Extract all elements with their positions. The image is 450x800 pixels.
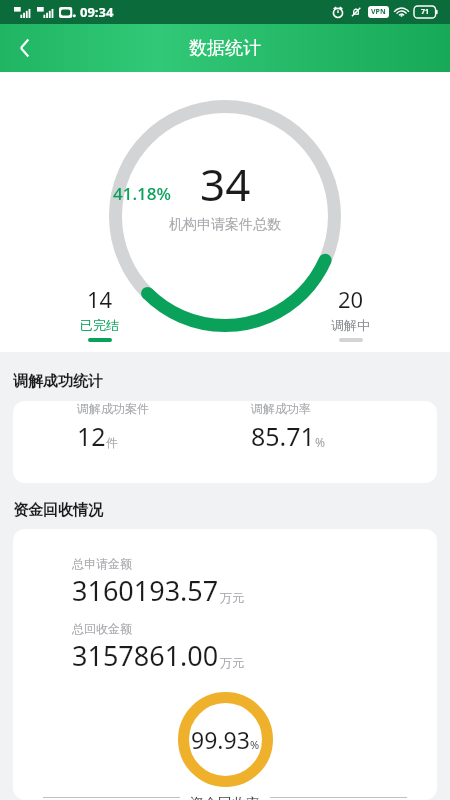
staticText: 34 bbox=[200, 154, 251, 214]
staticText: 万元 bbox=[220, 655, 244, 670]
staticText: 数据统计 bbox=[189, 37, 261, 60]
staticText: 调解成功率 bbox=[251, 401, 311, 416]
staticText: 调解成功案件 bbox=[77, 401, 149, 416]
staticText: 资金回收率 bbox=[190, 795, 260, 800]
staticText: 总申请金额 bbox=[72, 556, 132, 571]
staticText: 09:34 bbox=[80, 3, 114, 21]
staticText: 资金回收情况 bbox=[13, 501, 103, 520]
staticText: 14 bbox=[87, 284, 113, 314]
button[interactable]: 总申请金额 bbox=[13, 529, 437, 800]
staticText: % bbox=[315, 434, 325, 450]
button[interactable]: Back bbox=[0, 24, 50, 72]
staticText: 3157861.00 bbox=[72, 637, 219, 674]
button[interactable]: 14 bbox=[80, 284, 119, 342]
staticText: 调解中 bbox=[331, 317, 370, 333]
staticText: 万元 bbox=[220, 590, 244, 605]
staticText: VPN bbox=[371, 7, 386, 17]
staticText: 3160193.57 bbox=[72, 572, 219, 609]
staticText: 总回收金额 bbox=[72, 621, 132, 636]
staticText: 99.93 bbox=[191, 724, 250, 755]
staticText: 机构申请案件总数 bbox=[169, 216, 281, 234]
staticText: 41.18% bbox=[113, 182, 172, 205]
button[interactable]: 调解成功案件 bbox=[13, 401, 437, 483]
button[interactable]: 20 bbox=[331, 284, 370, 342]
staticText: 调解成功统计 bbox=[13, 372, 103, 391]
staticText: 件 bbox=[106, 435, 118, 450]
staticText: % bbox=[250, 737, 260, 752]
staticText: 85.71 bbox=[251, 419, 315, 453]
staticText: 已完结 bbox=[80, 317, 119, 333]
staticText: 12 bbox=[77, 419, 106, 453]
staticText: 71 bbox=[421, 7, 430, 17]
staticText: 20 bbox=[338, 284, 364, 314]
